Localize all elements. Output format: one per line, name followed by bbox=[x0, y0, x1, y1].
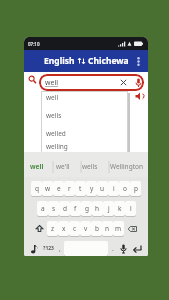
button[interactable] bbox=[137, 57, 140, 66]
button[interactable] bbox=[32, 221, 47, 236]
button[interactable] bbox=[120, 79, 127, 86]
button[interactable]: y bbox=[86, 181, 97, 196]
staticText: ?123 bbox=[43, 245, 54, 252]
button[interactable]: m bbox=[113, 221, 124, 236]
button[interactable]: n bbox=[102, 221, 113, 236]
button[interactable]: k bbox=[114, 201, 125, 216]
staticText: e bbox=[57, 184, 61, 193]
button[interactable]: well bbox=[39, 74, 144, 91]
button[interactable] bbox=[117, 241, 129, 256]
staticText: u bbox=[100, 184, 105, 193]
staticText: x bbox=[62, 224, 66, 233]
staticText: i bbox=[113, 184, 115, 193]
button[interactable]: q bbox=[31, 181, 42, 196]
button[interactable] bbox=[135, 92, 145, 101]
staticText: v bbox=[84, 224, 88, 233]
button[interactable]: welled bbox=[41, 127, 128, 145]
staticText: y bbox=[90, 184, 94, 193]
button[interactable]: d bbox=[59, 201, 70, 216]
staticText: t bbox=[79, 184, 82, 193]
staticText: w bbox=[45, 184, 51, 193]
button[interactable]: we'll bbox=[56, 162, 70, 171]
button[interactable]: , bbox=[55, 241, 64, 256]
staticText: s bbox=[52, 204, 56, 213]
button[interactable]: j bbox=[103, 201, 114, 216]
staticText: h bbox=[95, 204, 100, 213]
staticText: r bbox=[68, 184, 71, 193]
button[interactable]: l bbox=[125, 201, 136, 216]
button[interactable]: o bbox=[119, 181, 130, 196]
staticText: Chichewa bbox=[88, 55, 129, 67]
button[interactable]: wells bbox=[41, 109, 128, 127]
staticText: k bbox=[118, 204, 122, 213]
button[interactable]: welling bbox=[41, 145, 128, 154]
button[interactable]: wells bbox=[82, 162, 98, 171]
staticText: wells bbox=[46, 111, 62, 120]
staticText: p bbox=[134, 184, 138, 193]
button[interactable]: c bbox=[69, 221, 80, 236]
button[interactable]: i bbox=[108, 181, 119, 196]
button[interactable]: English bbox=[24, 50, 148, 72]
button[interactable] bbox=[28, 75, 38, 85]
staticText: well bbox=[46, 93, 59, 102]
button[interactable]: t bbox=[75, 181, 86, 196]
staticText: g bbox=[85, 204, 89, 213]
staticText: b bbox=[95, 224, 99, 233]
staticText: n bbox=[105, 224, 110, 233]
button[interactable]: g bbox=[81, 201, 92, 216]
button[interactable]: . bbox=[108, 241, 117, 256]
button[interactable]: well bbox=[30, 162, 44, 171]
staticText: q bbox=[35, 184, 39, 193]
staticText: . bbox=[112, 244, 114, 253]
staticText: a bbox=[41, 204, 45, 213]
button[interactable] bbox=[135, 78, 142, 88]
button[interactable]: s bbox=[48, 201, 59, 216]
button[interactable] bbox=[129, 241, 145, 256]
staticText: welling bbox=[46, 142, 68, 151]
button[interactable]: x bbox=[58, 221, 69, 236]
button[interactable] bbox=[28, 241, 41, 256]
staticText: welled bbox=[46, 129, 66, 138]
staticText: f bbox=[74, 204, 77, 213]
staticText: 07:10 bbox=[28, 41, 40, 47]
button[interactable]: b bbox=[91, 221, 102, 236]
staticText: l bbox=[130, 204, 132, 213]
button[interactable]: v bbox=[80, 221, 91, 236]
staticText: o bbox=[123, 184, 127, 193]
staticText: , bbox=[59, 244, 61, 253]
button[interactable] bbox=[124, 221, 140, 236]
staticText: well bbox=[45, 78, 59, 88]
button[interactable]: w bbox=[42, 181, 53, 196]
button[interactable]: r bbox=[64, 181, 75, 196]
button[interactable]: ?123 bbox=[41, 241, 55, 256]
button[interactable]: h bbox=[92, 201, 103, 216]
button[interactable]: Wellington bbox=[110, 162, 143, 171]
staticText: c bbox=[73, 224, 77, 233]
staticText: z bbox=[51, 224, 55, 233]
button[interactable]: p bbox=[130, 181, 141, 196]
button[interactable]: e bbox=[53, 181, 64, 196]
button[interactable]: z bbox=[47, 221, 58, 236]
button[interactable]: well bbox=[41, 91, 128, 109]
button[interactable]: f bbox=[70, 201, 81, 216]
staticText: m bbox=[115, 224, 122, 233]
staticText: English bbox=[44, 55, 75, 67]
staticText: d bbox=[63, 204, 67, 213]
button[interactable]: u bbox=[97, 181, 108, 196]
button[interactable]: a bbox=[37, 201, 48, 216]
staticText: j bbox=[108, 204, 110, 213]
